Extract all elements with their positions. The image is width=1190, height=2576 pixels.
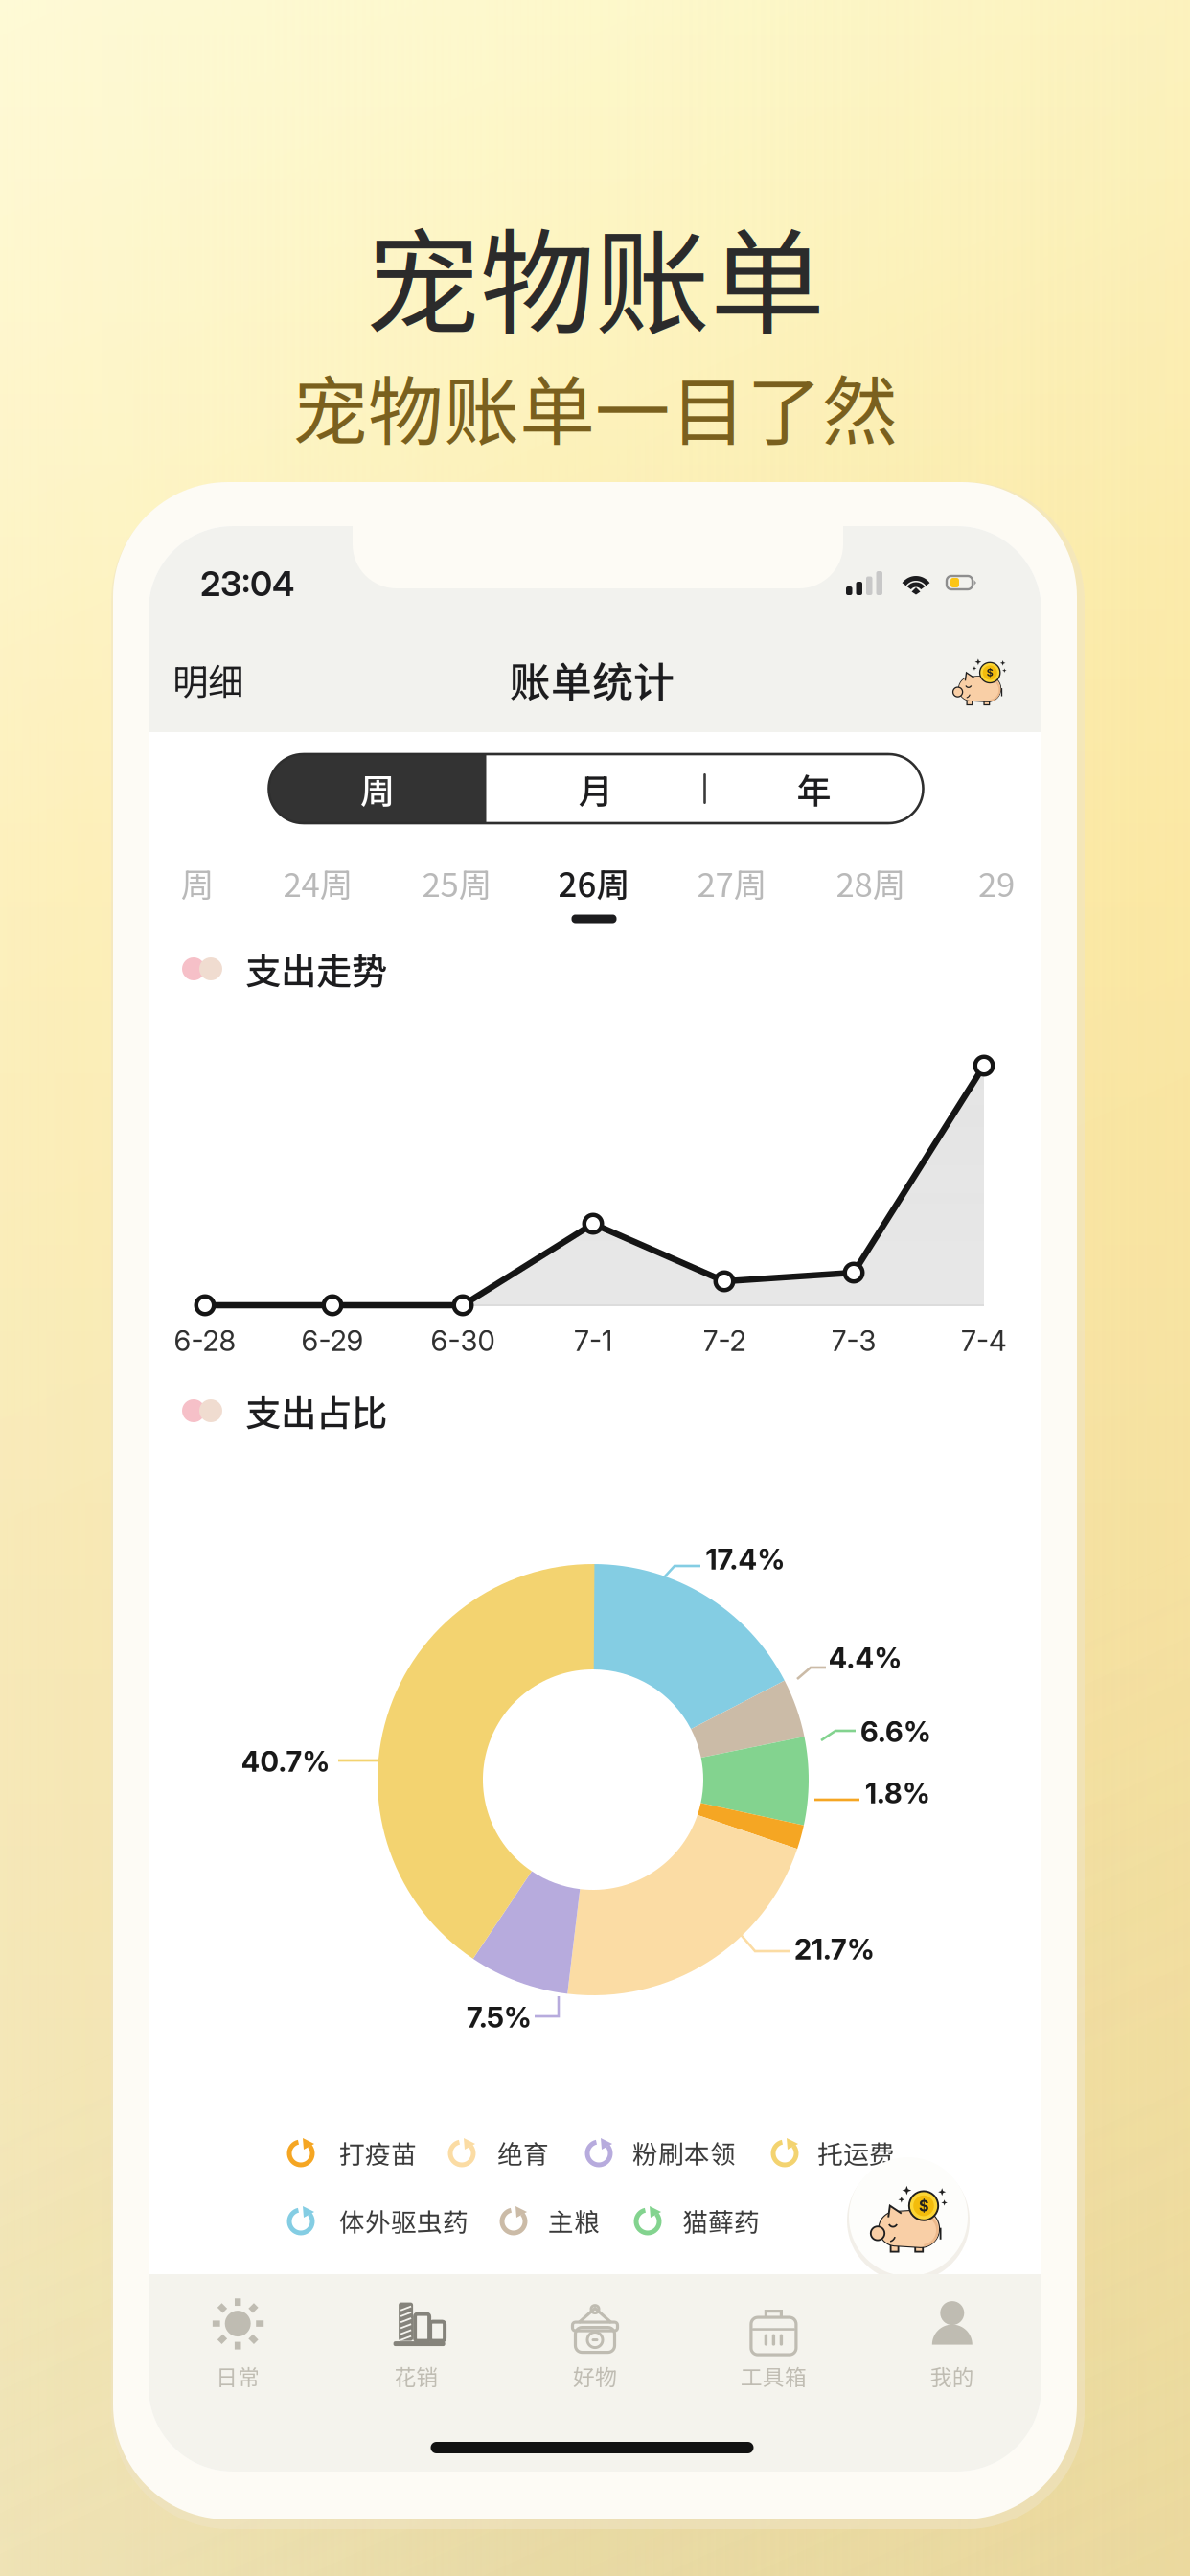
staticText: 支出占比 [245,1385,387,1437]
staticText: 40.7% [241,1744,330,1778]
staticText: 7-4 [961,1324,1007,1358]
staticText: 账单统计 [510,650,675,709]
staticText: 宠物账单一目了然 [292,352,898,461]
button[interactable]: 主粮 [149,2196,1041,2245]
button[interactable]: 月 [486,754,705,823]
button[interactable]: 打疫苗 [149,2127,1041,2177]
button[interactable]: 工具箱 [684,2287,863,2402]
button[interactable]: 存钱罐 [951,655,1007,710]
staticText: 23:04 [200,563,294,605]
staticText: 7-1 [574,1324,612,1358]
button[interactable]: 日常 [149,2287,327,2402]
staticText: 明细 [172,654,243,705]
button[interactable]: 记一笔 [845,2153,972,2280]
staticText: 支出走势 [245,943,387,995]
button[interactable]: 25周 [388,848,526,940]
staticText: 29 [978,859,1015,907]
staticText: 我的 [930,2360,974,2391]
button[interactable]: 周 [269,754,486,823]
staticText: 27周 [697,859,767,907]
staticText: 花销 [394,2360,438,2391]
staticText: 1.8% [865,1776,930,1810]
button[interactable]: 体外驱虫药 [149,2196,1041,2245]
button[interactable]: 托运费 [149,2127,1041,2177]
staticText: 25周 [422,859,492,907]
button[interactable]: 绝育 [149,2127,1041,2177]
staticText: 主粮 [548,2202,600,2239]
staticText: 24周 [283,859,353,907]
staticText: 月 [578,764,613,814]
staticText: 年 [797,764,831,814]
staticText: 6-29 [301,1324,364,1358]
staticText: 周 [181,859,214,907]
staticText: 6.6% [860,1715,931,1749]
button[interactable]: 28周 [802,848,940,940]
staticText: 7-2 [703,1324,746,1358]
staticText: 猫藓药 [682,2202,760,2239]
button[interactable]: 29 [927,848,1065,940]
button[interactable]: 周 [128,848,266,940]
staticText: 宠物账单 [365,192,825,358]
staticText: 26周 [558,859,630,907]
staticText: $ [987,667,993,679]
staticText: 7-3 [831,1324,876,1358]
button[interactable]: 我的 [863,2287,1041,2402]
staticText: 好物 [573,2360,617,2391]
button[interactable]: 粉刷本领 [149,2127,1041,2177]
staticText: 17.4% [706,1542,785,1576]
staticText: 6-28 [174,1324,236,1358]
staticText: 打疫苗 [339,2134,417,2171]
staticText: 6-30 [431,1324,495,1358]
button[interactable]: 好物 [506,2287,684,2402]
staticText: 托运费 [817,2134,895,2171]
staticText: 4.4% [828,1641,902,1675]
staticText: 绝育 [497,2134,549,2171]
staticText: 工具箱 [741,2360,807,2391]
staticText: 日常 [216,2360,260,2391]
button[interactable]: 年 [705,754,923,823]
staticText: $ [919,2196,928,2215]
staticText: 周 [360,764,395,814]
staticText: 21.7% [794,1932,875,1966]
button[interactable]: 明细 [172,630,316,729]
staticText: 28周 [836,859,906,907]
button[interactable]: 猫藓药 [149,2196,1041,2245]
button[interactable]: 27周 [663,848,801,940]
button[interactable]: 24周 [249,848,387,940]
button[interactable]: 花销 [327,2287,506,2402]
staticText: 7.5% [467,2000,532,2034]
button[interactable]: 26周 [525,848,663,940]
staticText: 体外驱虫药 [339,2202,469,2239]
staticText: 粉刷本领 [632,2134,736,2171]
